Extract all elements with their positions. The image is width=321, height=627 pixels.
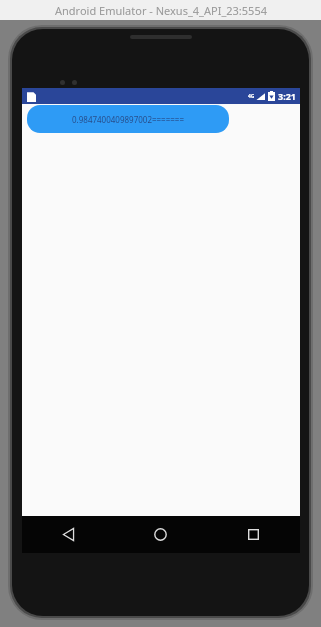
- staticText: Android Emulator - Nexus_4_API_23:5554: [55, 3, 267, 18]
- staticText: 4G: [248, 93, 255, 100]
- staticText: 3:21: [278, 90, 296, 102]
- button[interactable]: Recent apps: [207, 516, 300, 553]
- button[interactable]: Back: [22, 516, 114, 553]
- staticText: 0.9847400409897002=======: [72, 114, 184, 125]
- button[interactable]: 0.9847400409897002=======: [27, 105, 229, 133]
- button[interactable]: Home: [114, 516, 207, 553]
